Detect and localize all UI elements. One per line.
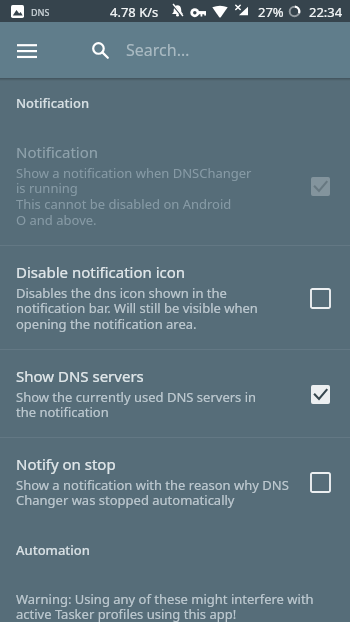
staticText: Notification xyxy=(16,94,90,112)
staticText: 27% xyxy=(258,3,284,21)
button[interactable]: Disable notification icon xyxy=(306,284,334,312)
staticText: 22:34 xyxy=(309,3,343,21)
staticText: Show DNS servers xyxy=(16,366,144,386)
staticText: Automation xyxy=(16,541,90,559)
staticText: Notify on stop xyxy=(16,454,116,474)
staticText: Show a notification with the reason why … xyxy=(16,476,289,509)
staticText: Show a notification when DNSChanger is r… xyxy=(16,164,252,229)
staticText: Search… xyxy=(126,39,190,61)
button[interactable]: Notify on stop xyxy=(306,468,334,496)
button[interactable]: Notification xyxy=(306,172,334,200)
button[interactable]: Notify on stop xyxy=(0,438,350,525)
staticText: Show the currently used DNS servers in t… xyxy=(16,388,257,421)
staticText: Disables the dns icon shown in the notif… xyxy=(16,284,258,333)
button[interactable]: Notification xyxy=(0,126,350,245)
staticText: Warning: Using any of these might interf… xyxy=(16,590,314,622)
button[interactable]: Show DNS servers xyxy=(306,380,334,408)
button[interactable]: Show DNS servers xyxy=(0,350,350,437)
staticText: Disable notification icon xyxy=(16,262,186,282)
button[interactable]: Open navigation drawer xyxy=(0,23,54,77)
staticText: DNS xyxy=(31,6,50,18)
button[interactable]: Disable notification icon xyxy=(0,246,350,349)
staticText: 4.78 K/s xyxy=(110,3,159,21)
staticText: Notification xyxy=(16,142,99,162)
